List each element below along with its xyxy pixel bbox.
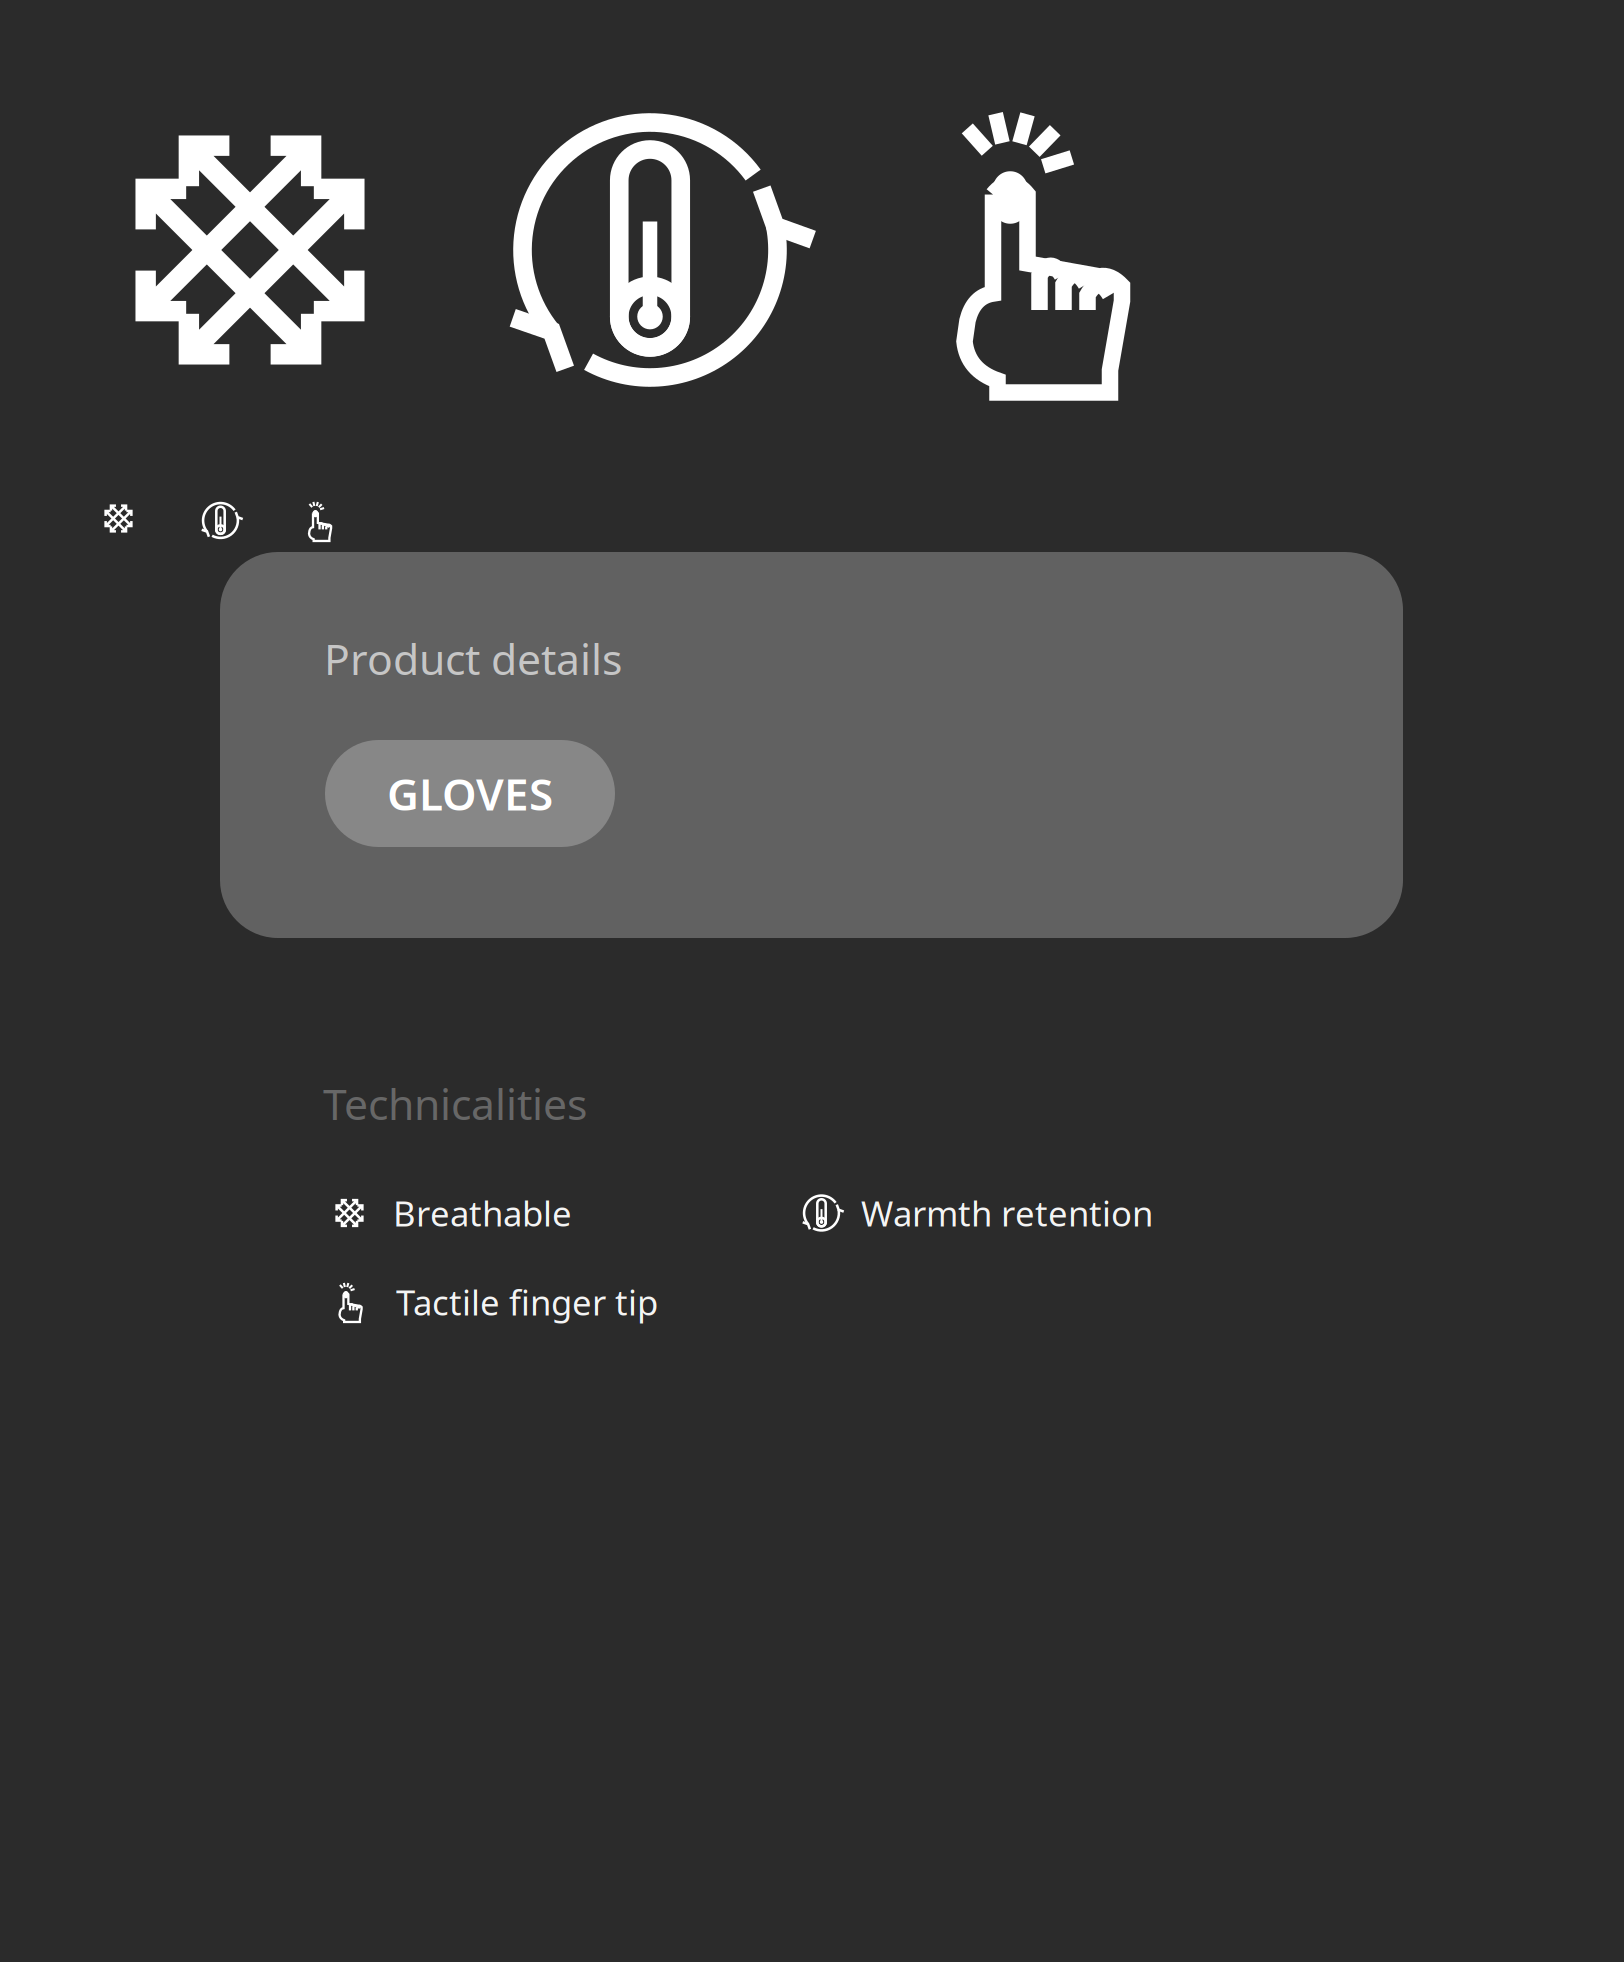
staticText: Technicalities <box>323 1075 587 1132</box>
button[interactable]: GLOVES <box>325 740 615 847</box>
staticText: Warmth retention <box>861 1190 1153 1236</box>
staticText: GLOVES <box>387 764 553 823</box>
staticText: Product details <box>324 630 622 687</box>
staticText: Breathable <box>393 1190 572 1236</box>
staticText: Tactile finger tip <box>396 1279 658 1325</box>
